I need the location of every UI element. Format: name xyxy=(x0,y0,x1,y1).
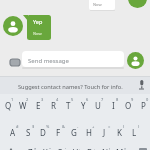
staticText: ( xyxy=(123,124,125,129)
staticText: = xyxy=(108,124,111,129)
staticText: Now xyxy=(93,2,102,7)
staticText: 9 xyxy=(131,97,134,102)
button[interactable] xyxy=(127,52,144,69)
staticText: : xyxy=(79,147,81,150)
staticText: ; xyxy=(94,147,96,150)
staticText: - xyxy=(77,124,79,129)
staticText: Now xyxy=(33,31,42,36)
button[interactable] xyxy=(22,51,124,67)
staticText: # xyxy=(16,124,19,129)
staticText: F xyxy=(56,127,61,138)
staticText: O xyxy=(125,100,132,111)
staticText: 7 xyxy=(101,97,104,102)
staticText: B xyxy=(87,147,93,150)
staticText: Y xyxy=(81,100,86,111)
staticText: Q xyxy=(5,100,12,111)
staticText: * xyxy=(34,147,37,150)
staticText: C xyxy=(57,147,63,150)
staticText: X xyxy=(43,147,48,150)
staticText: 2 xyxy=(26,97,29,102)
staticText: 0 xyxy=(146,97,149,102)
staticText: 6 xyxy=(86,97,89,102)
staticText: J xyxy=(103,127,106,138)
staticText: H xyxy=(86,127,92,138)
staticText: L xyxy=(132,127,137,138)
staticText: $ xyxy=(32,124,35,129)
staticText: M xyxy=(116,147,124,150)
button[interactable] xyxy=(89,0,115,10)
staticText: 5 xyxy=(71,97,74,102)
button[interactable] xyxy=(27,15,51,40)
staticText: W xyxy=(19,100,27,111)
staticText: ' xyxy=(65,147,66,150)
staticText: 1 xyxy=(11,97,14,102)
staticText: G xyxy=(71,127,77,138)
staticText: ! xyxy=(109,147,111,150)
staticText: T xyxy=(66,100,71,111)
staticText: Send message xyxy=(28,57,69,65)
staticText: S xyxy=(26,127,31,138)
staticText: N xyxy=(102,147,109,150)
staticText: + xyxy=(92,124,95,129)
button[interactable] xyxy=(3,16,23,36)
button[interactable] xyxy=(128,0,147,8)
staticText: & xyxy=(62,124,65,129)
staticText: 8 xyxy=(116,97,119,102)
staticText: R xyxy=(51,100,56,111)
staticText: K xyxy=(117,127,122,138)
staticText: Yep xyxy=(33,18,43,25)
staticText: V xyxy=(73,147,78,150)
staticText: E xyxy=(36,100,41,111)
staticText: A xyxy=(10,127,16,138)
staticText: U xyxy=(95,100,101,111)
staticText: Suggest contact names? Touch for info. xyxy=(18,83,123,91)
staticText: % xyxy=(46,124,50,129)
staticText: P xyxy=(141,100,146,111)
staticText: 4 xyxy=(56,97,59,102)
staticText: " xyxy=(49,147,51,150)
staticText: 3 xyxy=(41,97,44,102)
staticText: D xyxy=(40,127,46,138)
staticText: I xyxy=(112,100,115,111)
staticText: ? xyxy=(124,147,126,150)
staticText: Z xyxy=(28,147,33,150)
staticText: ) xyxy=(138,124,140,129)
